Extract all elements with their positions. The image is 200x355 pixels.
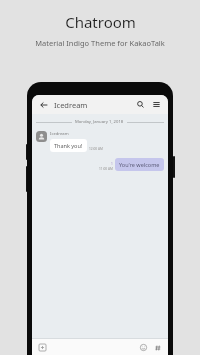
- staticText: Icedream: [50, 131, 69, 137]
- staticText: 11:00 AM: [99, 167, 113, 171]
- staticText: Monday, January 1, 2018: [75, 119, 124, 125]
- staticText: Thank you!: [54, 142, 83, 149]
- button[interactable]: Stickers: [152, 342, 163, 353]
- button[interactable]: Thank you!: [50, 139, 87, 152]
- staticText: 1: [111, 162, 113, 166]
- button[interactable]: Back: [37, 98, 50, 111]
- staticText: You're welcome: [119, 161, 160, 168]
- button[interactable]: Emoji: [138, 342, 149, 353]
- button[interactable]: Search: [134, 98, 147, 111]
- button[interactable]: Menu: [150, 98, 163, 111]
- staticText: Icedream: [54, 100, 88, 110]
- staticText: Material Indigo Theme for KakaoTalk: [35, 38, 165, 48]
- staticText: Chatroom: [65, 12, 136, 32]
- staticText: 12:00 AM: [89, 147, 103, 151]
- button[interactable]: Add attachment: [37, 342, 48, 353]
- button[interactable]: You're welcome: [115, 158, 164, 171]
- button[interactable]: Profile picture: [36, 131, 47, 142]
